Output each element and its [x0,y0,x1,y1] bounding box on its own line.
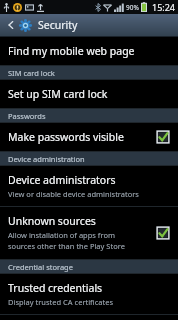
staticText: Security [38,18,78,32]
staticText: SIM card lock [8,68,55,78]
staticText: Credential storage [8,262,73,272]
button[interactable]: Set up SIM card lock [0,80,178,109]
staticText: Trusted credentials [8,281,103,295]
other: Enabled [156,130,170,144]
button[interactable]: Trusted credentials [0,274,178,315]
staticText: sources other than the Play Store [8,241,125,251]
staticText: Device administration [8,154,85,164]
button[interactable]: Unknown sources [0,207,178,260]
staticText: Set up SIM card lock [8,87,108,101]
staticText: Unknown sources [8,214,96,228]
staticText: View or disable device administrators [8,189,139,199]
staticText: 15:24 [152,1,176,13]
staticText: Find my mobile web page [8,44,135,58]
staticText: Display trusted CA certificates [8,297,113,307]
button[interactable]: Make passwords visible [0,123,178,152]
staticText: Passwords [8,111,46,121]
staticText: Make passwords visible [8,130,124,144]
other: Enabled [156,226,170,240]
staticText: Device administrators [8,173,116,187]
staticText: Allow installation of apps from [8,230,115,240]
button[interactable]: Navigate up [4,18,18,32]
button[interactable]: Device administrators [0,166,178,207]
button[interactable]: Find my mobile web page [0,37,178,66]
staticText: 90% [126,3,139,12]
